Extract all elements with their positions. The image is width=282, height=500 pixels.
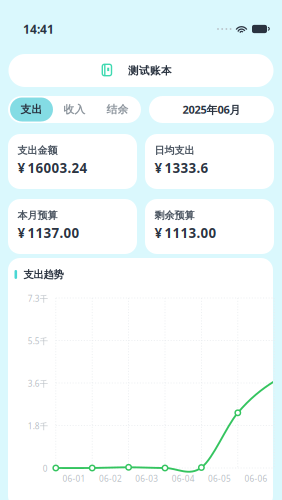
staticText: 06-04 (172, 473, 195, 484)
staticText: 06-03 (135, 473, 158, 484)
staticText: 7.3千 (28, 293, 48, 304)
button[interactable]: 测试账本 (8, 54, 273, 87)
staticText: 结余 (106, 103, 128, 116)
staticText: 剩余预算 (154, 209, 194, 222)
button[interactable]: 收入 (53, 97, 96, 121)
staticText: ¥ 1113.00 (154, 224, 216, 242)
staticText: 06-01 (62, 473, 85, 484)
staticText: 1.8千 (28, 420, 48, 432)
staticText: 支出金额 (17, 144, 57, 157)
staticText: 2025年06月 (182, 102, 240, 117)
staticText: 本月预算 (17, 209, 57, 222)
staticText: 3.6千 (28, 378, 48, 389)
button[interactable]: 2025年06月 (149, 96, 274, 123)
staticText: 5.5千 (28, 335, 48, 347)
staticText: 14:41 (23, 21, 54, 37)
staticText: ¥ 1333.6 (154, 159, 208, 177)
staticText: 收入 (63, 103, 85, 116)
staticText: 06-05 (208, 473, 231, 484)
staticText: ¥ 1137.00 (17, 224, 79, 242)
button[interactable]: 支出 (10, 97, 53, 121)
staticText: 06-02 (99, 473, 122, 484)
staticText: 测试账本 (128, 64, 172, 77)
staticText: ¥ 16003.24 (17, 159, 87, 177)
staticText: 06-06 (244, 473, 267, 484)
staticText: 支出 (20, 103, 42, 116)
button[interactable]: 结余 (96, 97, 139, 121)
staticText: 日均支出 (154, 144, 194, 157)
staticText: 支出趋势 (24, 268, 64, 281)
staticText: 0 (43, 463, 48, 474)
